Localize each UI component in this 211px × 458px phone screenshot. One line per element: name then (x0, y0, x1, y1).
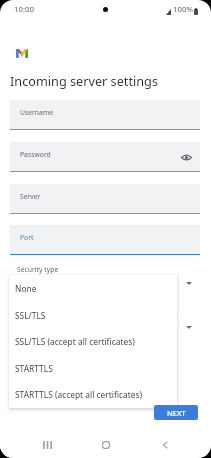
button[interactable]: STARTTLS (accept all certificates) (9, 381, 177, 408)
staticText: SSL/TLS (15, 310, 46, 321)
staticText: Username (20, 108, 54, 117)
button[interactable]: NEXT (154, 405, 198, 420)
button[interactable]: Username (10, 100, 200, 130)
staticText: STARTTLS (15, 363, 53, 374)
other: Show password (181, 154, 192, 161)
button[interactable]: SSL/TLS (9, 302, 177, 329)
button[interactable]: Open dropdown (10, 265, 200, 295)
staticText: SSL/TLS (accept all certificates) (15, 336, 135, 347)
staticText: 10:00 (14, 4, 34, 15)
button[interactable]: Port (10, 225, 200, 255)
button[interactable]: STARTTLS (9, 355, 177, 382)
staticText: Security type (17, 265, 59, 274)
button[interactable]: Recents (29, 431, 65, 458)
staticText: NEXT (167, 408, 186, 418)
button[interactable]: SSL/TLS (accept all certificates) (9, 328, 177, 355)
button[interactable]: Back (147, 431, 183, 458)
staticText: 100% (173, 4, 193, 15)
button[interactable]: Home (88, 431, 124, 458)
staticText: Port (20, 233, 34, 242)
staticText: STARTTLS (accept all certificates) (15, 389, 143, 400)
staticText: Incoming server settings (10, 72, 158, 89)
staticText: Server (20, 192, 41, 201)
button[interactable]: Open dropdown (10, 309, 200, 339)
button[interactable]: Server (10, 184, 200, 214)
button[interactable]: Password (10, 142, 200, 172)
staticText: None (15, 283, 37, 294)
staticText: Password (20, 150, 51, 159)
button[interactable]: None (9, 275, 177, 302)
